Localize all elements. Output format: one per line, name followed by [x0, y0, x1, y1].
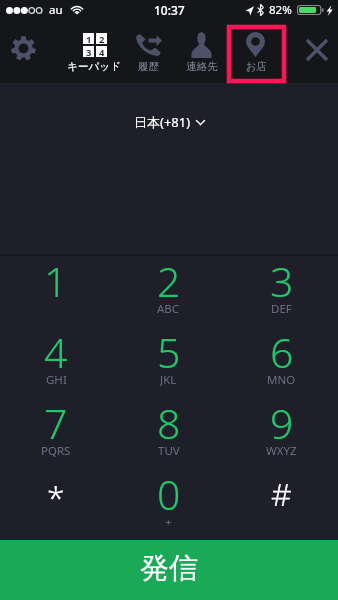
- button[interactable]: 1: [67, 20, 121, 83]
- staticText: 3: [86, 46, 92, 57]
- staticText: 10:37: [154, 2, 185, 18]
- staticText: 4: [99, 46, 105, 57]
- staticText: JKL: [160, 372, 177, 387]
- button[interactable]: *: [0, 469, 112, 540]
- staticText: DEF: [271, 301, 292, 316]
- staticText: 82%: [269, 2, 292, 18]
- staticText: 8: [157, 395, 181, 451]
- staticText: 9: [270, 395, 294, 451]
- staticText: +: [165, 514, 172, 529]
- staticText: PQRS: [41, 443, 71, 458]
- button[interactable]: Settings: [0, 32, 47, 64]
- staticText: 連絡先: [186, 60, 218, 73]
- staticText: キーパッド: [67, 60, 121, 73]
- button[interactable]: 4: [0, 327, 112, 398]
- staticText: 4: [44, 324, 68, 380]
- staticText: 1: [86, 33, 92, 44]
- staticText: au: [49, 2, 63, 18]
- button[interactable]: 3: [225, 256, 338, 327]
- button[interactable]: Close: [295, 38, 338, 62]
- button[interactable]: 6: [225, 327, 338, 398]
- staticText: 発信: [140, 550, 198, 587]
- button[interactable]: 1: [0, 256, 112, 327]
- button[interactable]: お店: [228, 20, 283, 83]
- staticText: お店: [245, 60, 267, 73]
- button[interactable]: 0: [112, 469, 225, 540]
- staticText: 7: [44, 395, 68, 451]
- staticText: 日本(+81): [134, 113, 191, 131]
- button[interactable]: 日本(+81): [126, 109, 213, 135]
- staticText: 3: [270, 253, 294, 309]
- button[interactable]: #: [225, 469, 338, 540]
- button[interactable]: 連絡先: [175, 20, 228, 83]
- button[interactable]: 5: [112, 327, 225, 398]
- staticText: TUV: [158, 443, 180, 458]
- staticText: 履歴: [138, 60, 159, 73]
- staticText: #: [271, 472, 292, 516]
- staticText: 2: [99, 33, 105, 44]
- button[interactable]: 7: [0, 398, 112, 469]
- staticText: 5: [157, 324, 181, 380]
- staticText: *: [47, 475, 65, 519]
- staticText: MNO: [267, 372, 296, 387]
- staticText: 0: [157, 466, 181, 522]
- staticText: 1: [44, 253, 68, 309]
- button[interactable]: 履歴: [122, 20, 175, 83]
- button[interactable]: 発信: [0, 540, 338, 600]
- button[interactable]: 9: [225, 398, 338, 469]
- button[interactable]: 2: [112, 256, 225, 327]
- staticText: 6: [270, 324, 294, 380]
- staticText: GHI: [46, 372, 67, 387]
- staticText: ABC: [157, 301, 180, 316]
- staticText: WXYZ: [266, 443, 297, 458]
- button[interactable]: 8: [112, 398, 225, 469]
- staticText: 2: [157, 253, 181, 309]
